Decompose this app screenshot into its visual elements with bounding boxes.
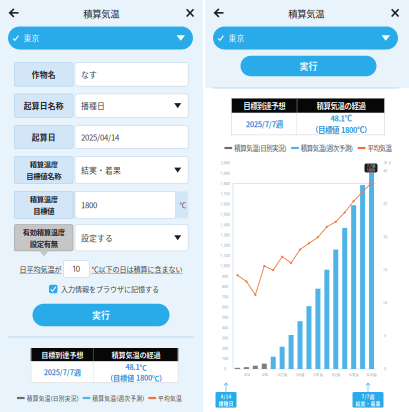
button[interactable]: 東京 bbox=[213, 26, 398, 49]
button[interactable]: Back bbox=[208, 2, 230, 24]
staticText: （目標値 1800℃） bbox=[106, 372, 166, 383]
staticText: 目標値名称 bbox=[26, 171, 61, 181]
staticText: 2025/7/7週 bbox=[44, 367, 81, 377]
staticText: 700 bbox=[222, 295, 228, 299]
staticText: 48.1℃ bbox=[125, 361, 146, 372]
staticText: 48.1℃ bbox=[330, 113, 351, 124]
button[interactable]: Back bbox=[3, 2, 25, 24]
staticText: 入力情報をブラウザに記憶する bbox=[61, 284, 159, 294]
button[interactable]: Close bbox=[180, 2, 200, 23]
staticText: 起算日名称 bbox=[24, 100, 64, 111]
staticText: 積算温度 bbox=[30, 194, 58, 204]
staticText: 結実・着果 bbox=[81, 164, 121, 176]
staticText: 設定有無 bbox=[30, 238, 58, 249]
staticText: 0 bbox=[384, 367, 386, 371]
staticText: 積算気温 bbox=[288, 7, 324, 20]
button[interactable]: 実行 bbox=[32, 304, 169, 326]
staticText: なす bbox=[81, 69, 97, 80]
staticText: 東京 bbox=[228, 32, 244, 43]
staticText: 目標到達予想 bbox=[243, 100, 285, 111]
staticText: 目標値 bbox=[33, 205, 54, 216]
staticText: 5/19週 bbox=[313, 373, 323, 377]
staticText: 1,700 bbox=[220, 192, 229, 196]
staticText: 実行 bbox=[92, 309, 110, 321]
staticText: 5 bbox=[384, 334, 386, 338]
staticText: 日平均気温が bbox=[19, 264, 61, 274]
staticText: 4/21週 bbox=[278, 373, 288, 377]
staticText: 15 bbox=[383, 268, 387, 272]
staticText: 2025/7/7週 bbox=[246, 119, 283, 129]
button[interactable]: 実行 bbox=[240, 56, 376, 76]
staticText: 2,000 bbox=[220, 161, 229, 165]
staticText: 200 bbox=[222, 346, 228, 351]
staticText: 積算気温の経過 bbox=[111, 349, 160, 360]
staticText: 1800 bbox=[81, 199, 97, 210]
staticText: 25 bbox=[383, 202, 387, 206]
staticText: 1,800 bbox=[220, 181, 229, 186]
staticText: 4/14 bbox=[220, 393, 231, 400]
staticText: 実行 bbox=[299, 60, 317, 72]
staticText: 31.4 bbox=[383, 161, 390, 165]
staticText: 7/7週 bbox=[367, 164, 375, 168]
staticText: 起算日 bbox=[32, 131, 56, 143]
staticText: 1,900 bbox=[220, 171, 229, 175]
staticText: 1,400 bbox=[220, 222, 229, 227]
staticText: 5/5週 bbox=[296, 373, 305, 377]
staticText: ℃以下の日は積算に含まない bbox=[91, 264, 182, 274]
staticText: 1,100 bbox=[220, 253, 229, 258]
staticText: 積算温度 bbox=[30, 159, 58, 170]
staticText: 1,600 bbox=[220, 202, 229, 206]
staticText: 積算気温 bbox=[83, 7, 119, 20]
staticText: 有効積算温度 bbox=[23, 227, 65, 237]
staticText: 30 bbox=[383, 169, 387, 173]
staticText: 設定する bbox=[81, 232, 113, 243]
staticText: 800 bbox=[222, 284, 228, 289]
staticText: 1,200 bbox=[220, 243, 229, 248]
staticText: 500 bbox=[222, 315, 228, 320]
staticText: 6/2週 bbox=[332, 373, 341, 377]
staticText: 平均気温 bbox=[368, 143, 392, 153]
staticText: 積算気温(日別実況) bbox=[234, 143, 286, 153]
staticText: 播種日 bbox=[81, 100, 105, 111]
staticText: 1,000 bbox=[220, 264, 229, 268]
staticText: （目標値 1800℃） bbox=[311, 124, 371, 135]
staticText: 0 bbox=[224, 367, 226, 371]
staticText: 300 bbox=[222, 336, 228, 340]
staticText: 100 bbox=[222, 356, 228, 361]
staticText: 東京 bbox=[23, 32, 39, 43]
staticText: 目標到達予想 bbox=[41, 349, 83, 360]
staticText: 20 bbox=[383, 235, 387, 239]
staticText: 作物名 bbox=[32, 69, 56, 80]
staticText: 10 bbox=[72, 264, 80, 273]
staticText: 結実・着果 bbox=[355, 400, 380, 407]
staticText: 6/30週 bbox=[367, 373, 378, 377]
staticText: 6/16週 bbox=[349, 373, 359, 377]
staticText: 4/16 bbox=[262, 373, 268, 377]
staticText: 4/14 bbox=[244, 373, 250, 377]
staticText: ℃ bbox=[179, 200, 186, 210]
staticText: 平均気温 bbox=[158, 394, 182, 402]
button[interactable]: 入力情報をブラウザに記憶する bbox=[49, 284, 159, 294]
staticText: 播種日 bbox=[218, 400, 233, 407]
staticText: 1,500 bbox=[220, 212, 229, 217]
staticText: 積算気温(週次予測) bbox=[92, 394, 144, 402]
button[interactable]: 東京 bbox=[8, 26, 193, 49]
staticText: 900 bbox=[222, 274, 228, 278]
staticText: 600 bbox=[222, 305, 228, 309]
staticText: 7/7週 bbox=[361, 393, 374, 400]
button[interactable]: Close bbox=[385, 2, 405, 23]
staticText: 1,300 bbox=[220, 233, 229, 237]
staticText: 積算気温(週次予測) bbox=[301, 143, 353, 153]
staticText: 1,800 bbox=[367, 168, 375, 172]
staticText: 400 bbox=[222, 325, 228, 330]
staticText: 積算気温の経過 bbox=[316, 100, 365, 111]
staticText: 2025/04/14 bbox=[81, 131, 119, 143]
staticText: 積算気温(日別実況) bbox=[27, 394, 79, 402]
staticText: 10 bbox=[383, 301, 387, 305]
